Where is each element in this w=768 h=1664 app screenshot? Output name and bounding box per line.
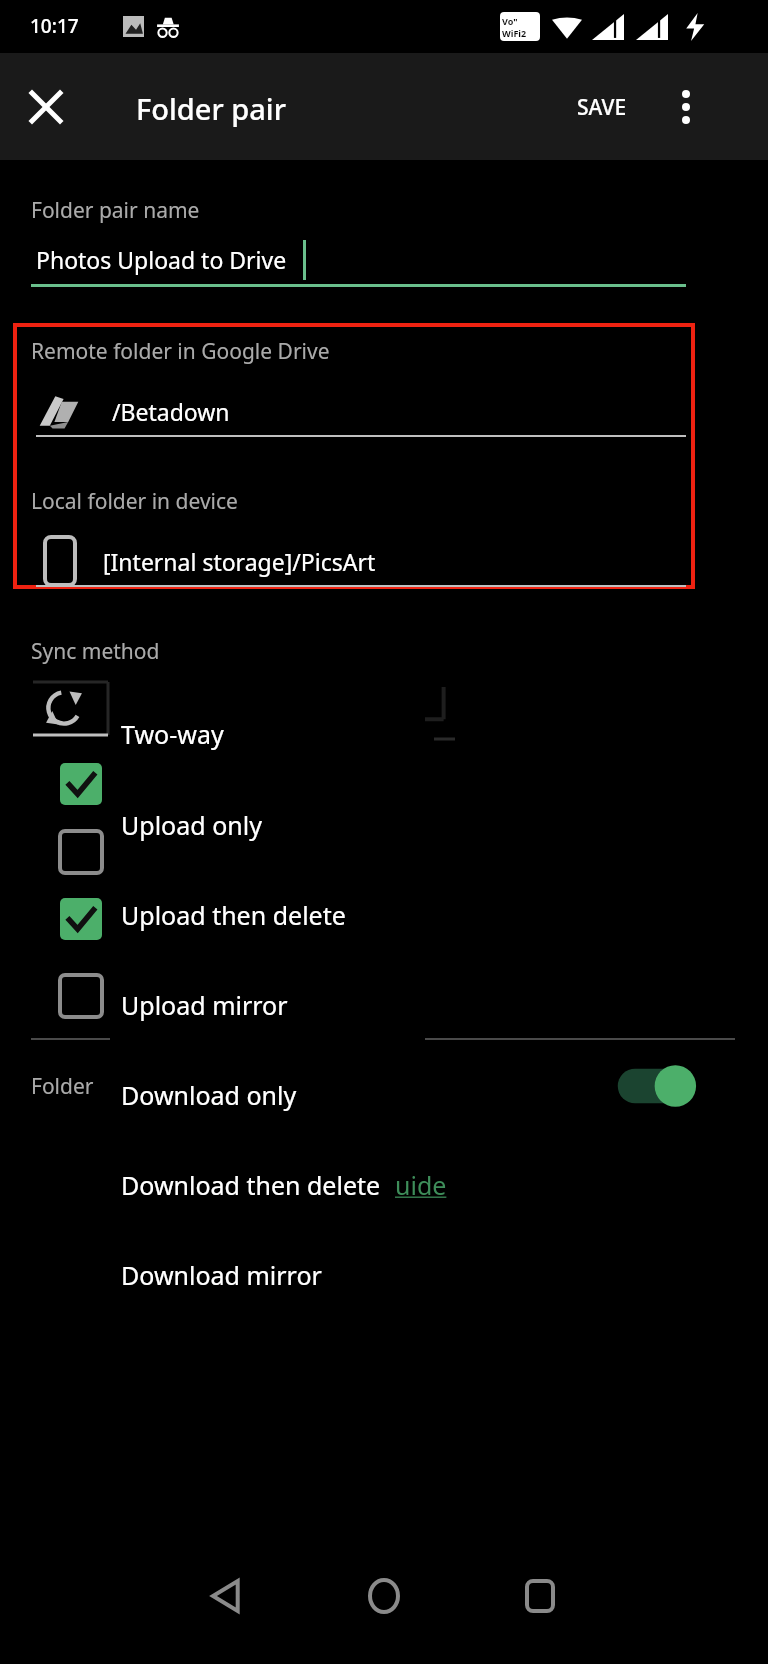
button[interactable]: Home — [356, 1568, 412, 1624]
staticText: Local folder in device — [31, 487, 238, 516]
staticText: Two-way — [121, 717, 224, 751]
button[interactable]: /Betadown — [31, 382, 686, 440]
staticText: Photos Upload to Drive — [36, 244, 287, 275]
button[interactable]: Unchecked — [60, 975, 102, 1017]
staticText: Remote folder in Google Drive — [31, 337, 330, 366]
staticText: Folder — [31, 1072, 94, 1101]
staticText: SAVE — [577, 93, 627, 122]
button[interactable]: Unchecked — [60, 831, 102, 873]
staticText: Vo" — [502, 15, 518, 27]
button[interactable]: Close — [16, 77, 76, 137]
button[interactable]: Recent apps — [512, 1568, 568, 1624]
staticText: /Betadown — [112, 396, 230, 427]
button[interactable]: Upload mirror — [0, 977, 768, 1033]
staticText: Download mirror — [121, 1258, 322, 1292]
staticText: uide — [395, 1168, 447, 1202]
button[interactable]: Checked — [60, 898, 102, 940]
staticText: Upload only — [121, 808, 262, 842]
staticText: Download then delete — [121, 1168, 381, 1202]
button[interactable]: Download only toggle — [612, 1058, 708, 1114]
button[interactable]: Upload then delete — [0, 887, 768, 943]
button[interactable]: Checked — [60, 763, 102, 805]
button[interactable]: Download mirror — [0, 1247, 768, 1303]
staticText: 10:17 — [30, 13, 79, 39]
button[interactable]: [Internal storage]/PicsArt — [31, 532, 686, 590]
staticText: [Internal storage]/PicsArt — [103, 546, 376, 577]
button[interactable]: SAVE — [548, 79, 656, 135]
button[interactable]: Photos Upload to Drive — [31, 238, 691, 290]
staticText: Folder pair name — [31, 196, 200, 225]
button[interactable]: Upload only — [0, 797, 768, 853]
button[interactable]: Back — [198, 1568, 254, 1624]
button[interactable]: Download then delete — [0, 1157, 768, 1213]
button[interactable]: Download only — [0, 1067, 768, 1123]
staticText: Upload mirror — [121, 988, 288, 1022]
staticText: Upload then delete — [121, 898, 346, 932]
staticText: Download only — [121, 1078, 297, 1112]
staticText: Sync method — [31, 637, 160, 666]
staticText: WiFi2 — [502, 27, 527, 39]
button[interactable]: Two-way — [0, 706, 768, 762]
staticText: Folder pair — [136, 89, 286, 128]
button[interactable]: More options — [656, 77, 716, 137]
